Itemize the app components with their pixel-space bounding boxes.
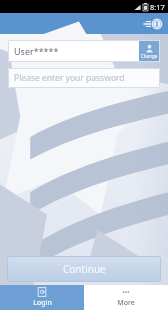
button[interactable]: More — [84, 285, 168, 310]
button[interactable]: Please enter your password — [8, 68, 160, 88]
staticText: User***** — [14, 45, 59, 57]
staticText: Please enter your password — [14, 72, 125, 84]
staticText: Continue — [63, 262, 106, 276]
staticText: 8:17 — [150, 2, 165, 12]
staticText: Change — [141, 53, 158, 59]
button[interactable]: Continue — [7, 256, 161, 282]
staticText: More — [117, 298, 135, 308]
staticText: Login — [33, 298, 52, 308]
button[interactable]: Change user — [139, 41, 159, 61]
button[interactable]: Send money — [142, 16, 164, 32]
button[interactable]: User***** — [8, 40, 160, 62]
button[interactable]: Login — [0, 285, 84, 310]
